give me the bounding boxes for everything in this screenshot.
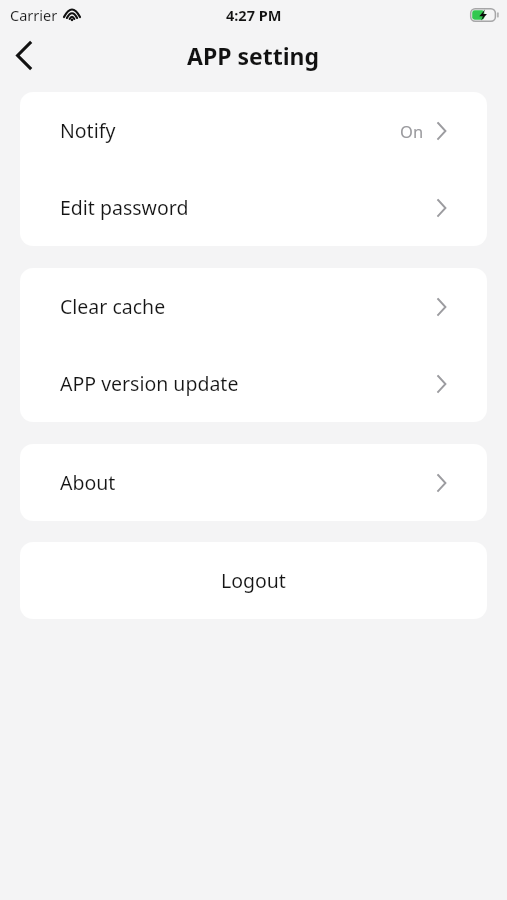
button[interactable]: Notify xyxy=(20,92,487,169)
button[interactable]: Clear cache xyxy=(20,268,487,345)
staticText: About xyxy=(60,469,116,496)
staticText: APP setting xyxy=(187,40,320,71)
staticText: Carrier xyxy=(10,5,58,25)
staticText: Edit password xyxy=(60,194,189,221)
staticText: APP version update xyxy=(60,370,239,397)
staticText: 4:27 PM xyxy=(226,5,282,25)
button[interactable]: About xyxy=(20,444,487,521)
button[interactable]: Edit password xyxy=(20,169,487,246)
button[interactable]: Back xyxy=(0,31,48,79)
staticText: Notify xyxy=(60,117,116,144)
staticText: On xyxy=(400,120,424,142)
button[interactable]: Logout xyxy=(20,542,487,619)
staticText: Clear cache xyxy=(60,293,166,320)
button[interactable]: APP version update xyxy=(20,345,487,422)
staticText: Logout xyxy=(221,567,286,594)
